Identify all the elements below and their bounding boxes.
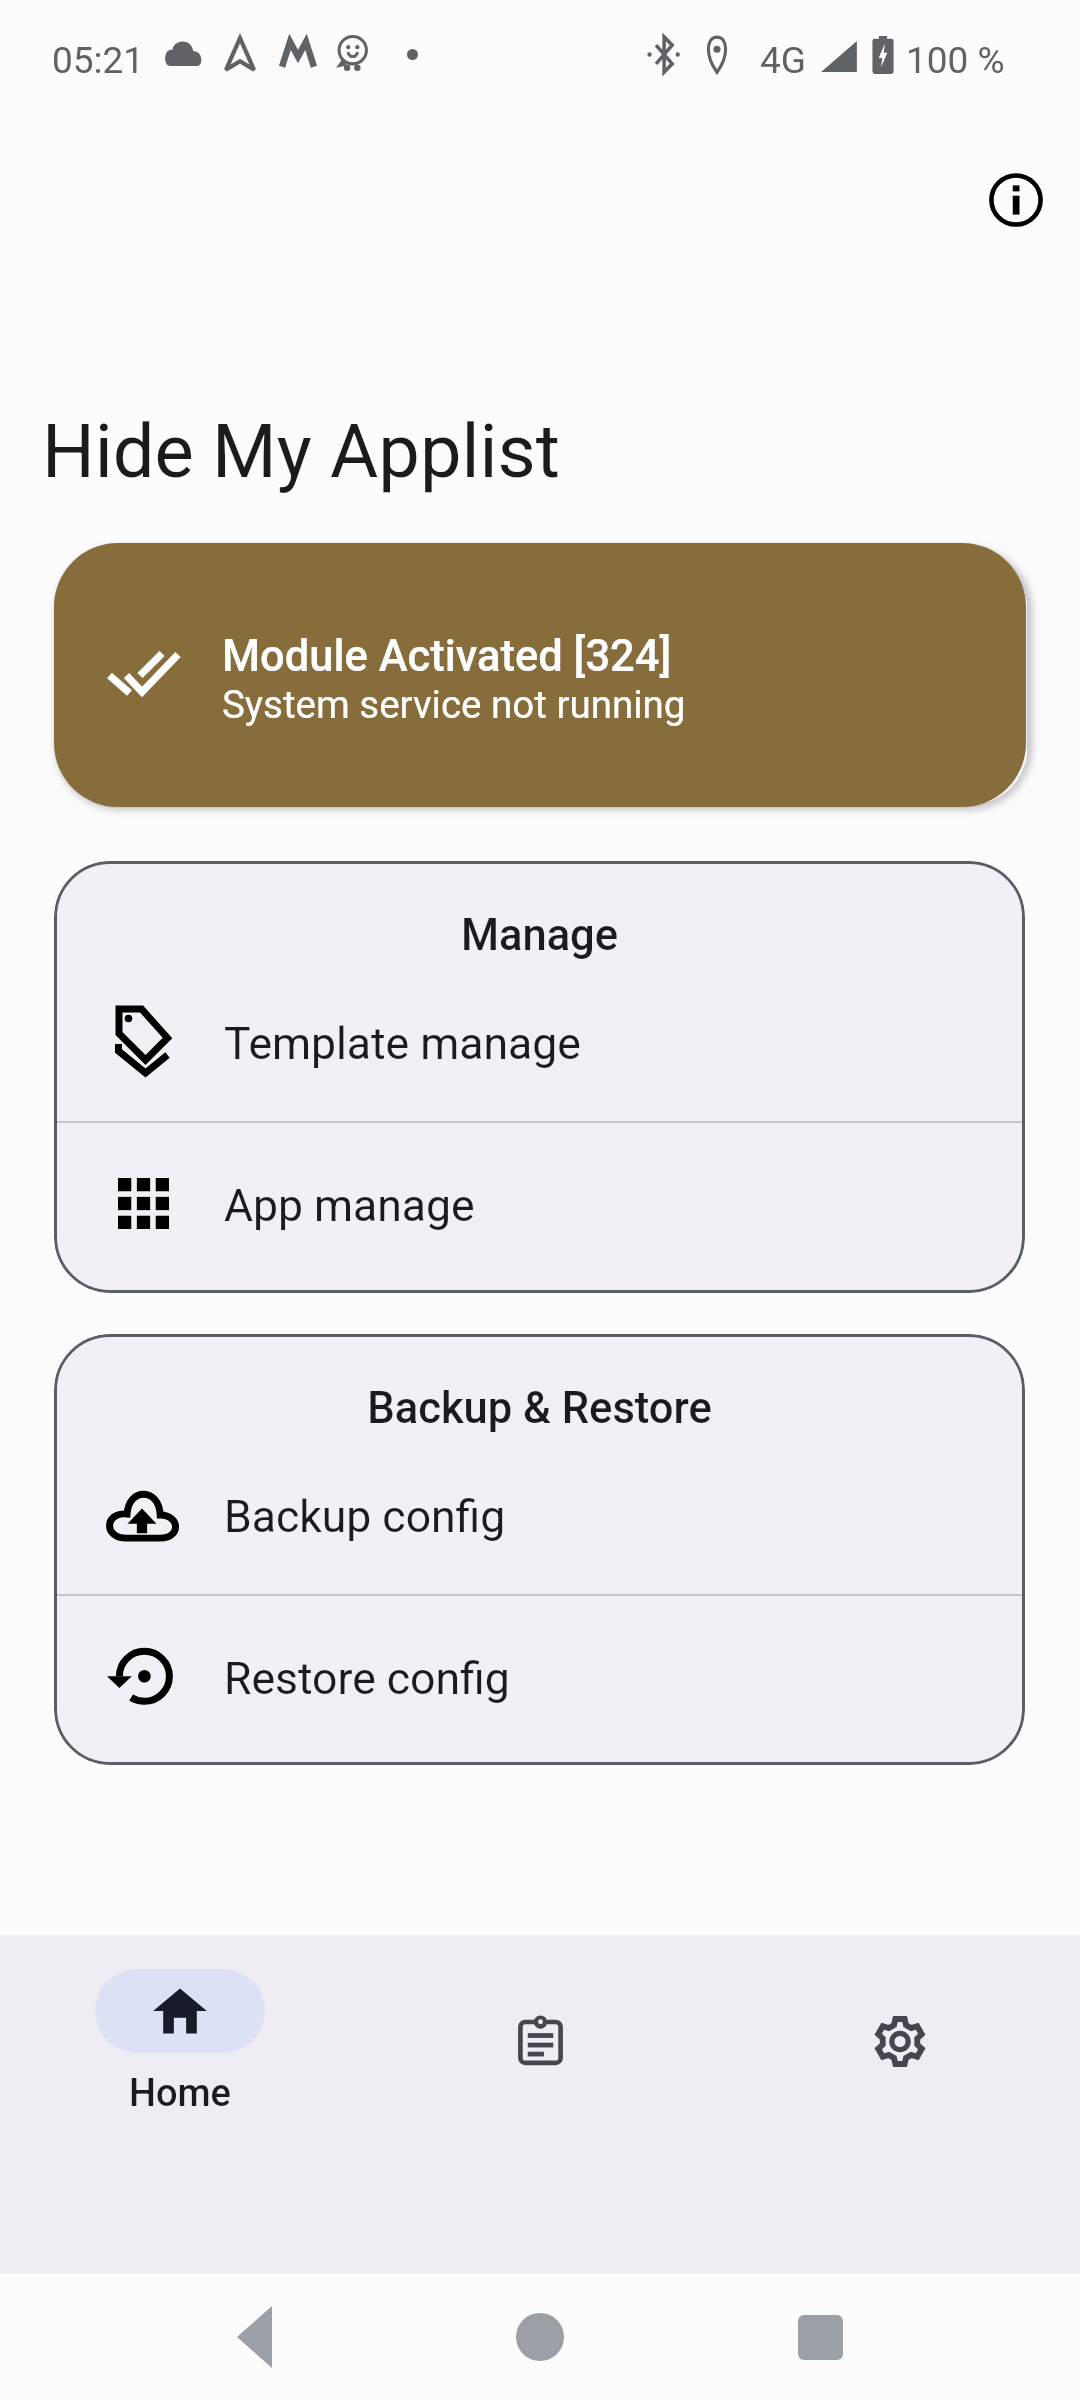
button[interactable]: App manage [54, 1123, 1025, 1283]
staticText: Template manage [224, 1018, 581, 1070]
staticText: 05:21 [52, 39, 145, 82]
button[interactable]: Module Activated [324] [54, 543, 1026, 807]
staticText: 4G [760, 39, 806, 82]
staticText: App manage [224, 1180, 475, 1232]
staticText: Module Activated [324] [222, 631, 672, 682]
staticText: System service not running [222, 682, 686, 727]
staticText: Backup config [224, 1491, 506, 1543]
button[interactable]: About [968, 152, 1064, 248]
button[interactable]: Home [0, 1935, 360, 2116]
staticText: Backup & Restore [54, 1383, 1025, 1434]
button[interactable]: Restore config [54, 1596, 1025, 1756]
staticText: Restore config [224, 1653, 510, 1705]
button[interactable]: Settings [720, 1935, 1080, 2135]
staticText: Home [129, 2071, 231, 2116]
staticText: Hide My Applist [42, 408, 560, 495]
button[interactable]: Backup config [54, 1434, 1025, 1594]
button[interactable]: Template manage [54, 961, 1025, 1121]
staticText: 100 % [906, 39, 1005, 82]
button[interactable]: Templates [360, 1935, 720, 2135]
staticText: Manage [54, 910, 1025, 961]
